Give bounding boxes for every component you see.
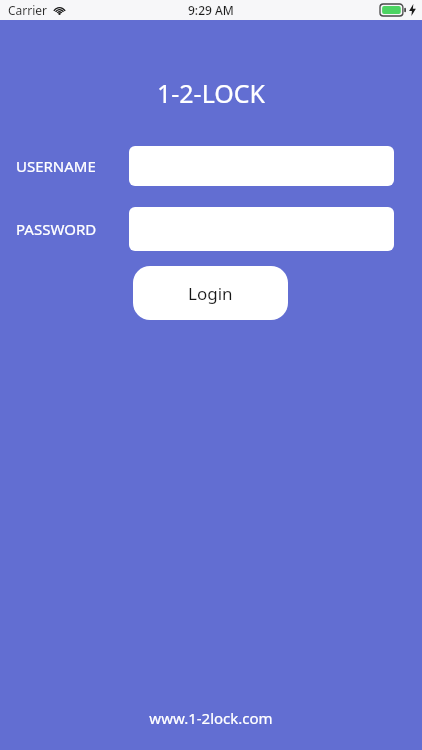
staticText: www.1-2lock.com xyxy=(0,708,422,728)
staticText: USERNAME xyxy=(16,156,96,176)
staticText: 1-2-LOCK xyxy=(0,76,422,110)
staticText: Login xyxy=(188,282,233,305)
staticText: PASSWORD xyxy=(16,219,97,239)
button[interactable]: Login xyxy=(133,266,288,320)
staticText: 9:29 AM xyxy=(188,2,234,18)
staticText: Carrier xyxy=(8,2,48,18)
button[interactable]: Username input field xyxy=(129,146,394,186)
button[interactable]: Password input field xyxy=(129,207,394,251)
